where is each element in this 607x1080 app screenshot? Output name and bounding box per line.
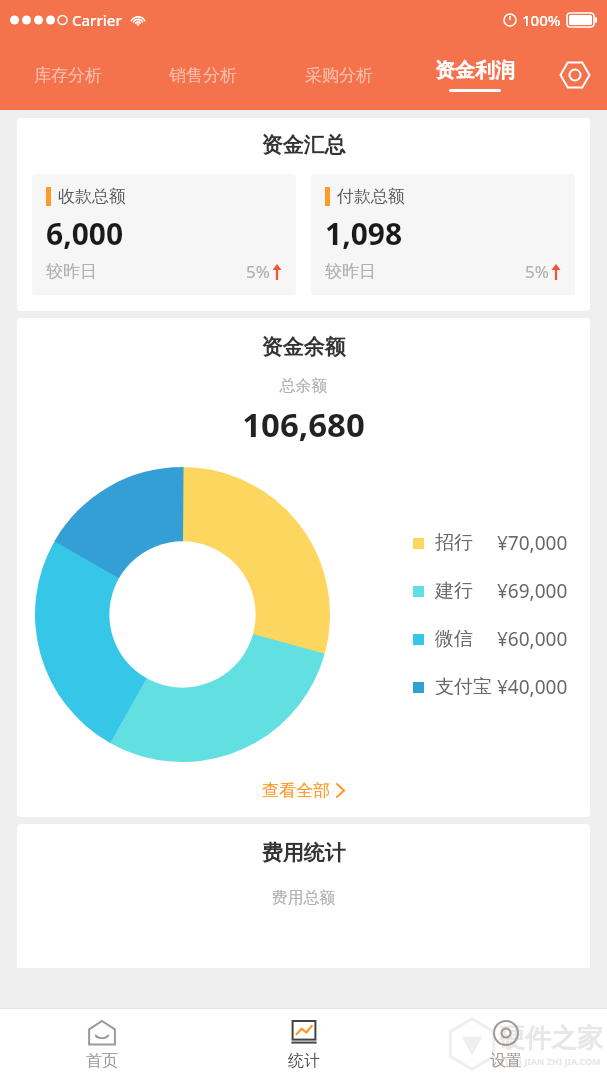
- staticText: 资金余额: [17, 334, 590, 360]
- button[interactable]: 资金利润: [407, 40, 543, 110]
- staticText: 微信: [435, 627, 473, 651]
- staticText: 首页: [86, 1051, 118, 1071]
- staticText: 建行: [435, 579, 473, 603]
- button[interactable]: 微信: [413, 626, 568, 652]
- staticText: 费用总额: [17, 888, 590, 908]
- button[interactable]: 收款总额: [32, 174, 296, 295]
- button[interactable]: 建行: [413, 578, 568, 604]
- staticText: 较昨日: [325, 261, 376, 282]
- staticText: 招行: [435, 531, 473, 555]
- staticText: 总余额: [17, 376, 590, 396]
- button[interactable]: 查看全部: [17, 774, 590, 807]
- button[interactable]: 库存分析: [0, 40, 135, 110]
- staticText: 费用统计: [17, 840, 590, 866]
- button[interactable]: Settings: [543, 40, 607, 110]
- staticText: Carrier: [72, 10, 122, 30]
- staticText: 设置: [490, 1051, 522, 1071]
- staticText: 支付宝: [435, 675, 492, 699]
- button[interactable]: 销售分析: [135, 40, 271, 110]
- button[interactable]: 招行: [413, 530, 568, 556]
- staticText: 106,680: [17, 402, 590, 447]
- staticText: 硬件之家: [499, 1022, 603, 1055]
- staticText: 付款总额: [337, 186, 405, 207]
- staticText: 库存分析: [34, 65, 102, 86]
- staticText: 1,098: [325, 213, 403, 254]
- staticText: 资金利润: [435, 58, 515, 83]
- staticText: YING JIAN ZHI JIA.COM: [499, 1055, 601, 1067]
- staticText: ¥70,000: [497, 530, 568, 556]
- button[interactable]: 首页: [0, 1008, 203, 1080]
- button[interactable]: 支付宝: [413, 674, 568, 700]
- button[interactable]: 付款总额: [311, 174, 575, 295]
- staticText: 采购分析: [305, 65, 373, 86]
- staticText: 6,000: [46, 213, 124, 254]
- staticText: 查看全部: [262, 780, 330, 801]
- staticText: 5%: [246, 260, 270, 283]
- button[interactable]: 统计: [203, 1008, 405, 1080]
- staticText: 资金汇总: [17, 132, 590, 158]
- staticText: 销售分析: [169, 65, 237, 86]
- button[interactable]: 设置: [405, 1008, 607, 1080]
- staticText: 收款总额: [58, 186, 126, 207]
- staticText: 较昨日: [46, 261, 97, 282]
- staticText: ¥69,000: [497, 578, 568, 604]
- staticText: 统计: [288, 1051, 320, 1071]
- staticText: 5%: [525, 260, 549, 283]
- button[interactable]: 采购分析: [271, 40, 407, 110]
- staticText: ¥40,000: [497, 674, 568, 700]
- staticText: ¥60,000: [497, 626, 568, 652]
- staticText: 100%: [522, 10, 561, 30]
